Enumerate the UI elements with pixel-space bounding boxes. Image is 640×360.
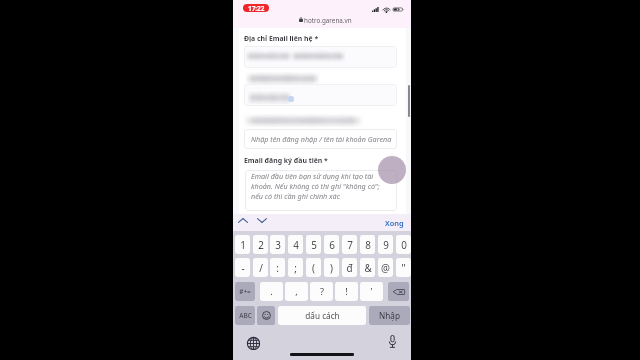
staticText: . <box>270 285 273 298</box>
button[interactable]: Recording 17:22 <box>243 4 269 12</box>
staticText: Email đăng ký đầu tiên * <box>244 156 328 165</box>
staticText: 5 <box>311 238 317 251</box>
button[interactable]: #+= <box>235 282 255 301</box>
staticText: Nhập <box>379 310 400 321</box>
staticText: Địa chỉ Email liên hệ * <box>244 34 319 43</box>
button[interactable]: Nhập tên đăng nhập / tên tài khoản Garen… <box>244 129 397 149</box>
staticText: - <box>241 261 245 274</box>
button[interactable]: Nhập <box>369 306 410 325</box>
staticText: 4 <box>293 238 299 251</box>
button[interactable]: đ <box>342 258 357 277</box>
button[interactable]: 6 <box>324 235 339 254</box>
staticText: ' <box>370 285 373 298</box>
button[interactable]: 5 <box>306 235 321 254</box>
staticText: Nhập tên đăng nhập / tên tài khoản Garen… <box>251 134 392 144</box>
button[interactable]: 1 <box>235 235 250 254</box>
staticText: 6 <box>329 238 335 251</box>
staticText: ABC <box>239 311 252 320</box>
button[interactable]: 4 <box>288 235 303 254</box>
button[interactable]: . <box>260 282 283 301</box>
button[interactable]: ) <box>324 258 339 277</box>
button[interactable]: ! <box>335 282 358 301</box>
staticText: ? <box>320 285 324 298</box>
staticText: 9 <box>383 238 389 251</box>
staticText: 3 <box>275 238 281 251</box>
button[interactable]: & <box>360 258 375 277</box>
button[interactable]: Next field <box>256 217 268 224</box>
staticText: & <box>364 261 372 274</box>
staticText: 17:22 <box>248 4 265 12</box>
button[interactable]: Emoji <box>257 306 275 325</box>
button[interactable]: 8 <box>360 235 375 254</box>
staticText: , <box>295 285 298 298</box>
staticText: đ <box>346 261 353 274</box>
staticText: hotro.garena.vn <box>304 16 352 25</box>
staticText: #+= <box>239 287 251 296</box>
button[interactable]: " <box>396 258 411 277</box>
button[interactable]: Xong <box>382 214 406 231</box>
button[interactable]: 7 <box>342 235 357 254</box>
staticText: ! <box>345 285 348 298</box>
staticText: 1 <box>240 238 246 251</box>
staticText: : <box>276 261 279 274</box>
button[interactable]: Change keyboard <box>246 336 260 350</box>
button[interactable]: ; <box>288 258 303 277</box>
staticText: ) <box>330 261 333 274</box>
button[interactable]: dấu cách <box>278 306 366 325</box>
button[interactable]: @ <box>378 258 393 277</box>
button[interactable]: 3 <box>270 235 285 254</box>
button[interactable]: 9 <box>378 235 393 254</box>
button[interactable]: ( <box>306 258 321 277</box>
staticText: dấu cách <box>305 310 340 321</box>
button[interactable]: Previous field <box>237 217 249 224</box>
button[interactable]: AssistiveTouch <box>378 156 406 184</box>
staticText: Email đầu tiên bạn sử dụng khi tạo tài k… <box>251 171 390 201</box>
staticText: " <box>401 261 406 274</box>
staticText: ; <box>294 261 297 274</box>
button[interactable]: ABC <box>235 306 255 325</box>
button[interactable]: Backspace <box>388 282 409 301</box>
button[interactable]: , <box>285 282 308 301</box>
button[interactable]: 0 <box>396 235 411 254</box>
staticText: @ <box>381 261 390 274</box>
button[interactable]: ? <box>310 282 333 301</box>
staticText: 8 <box>365 238 371 251</box>
button[interactable]: - <box>235 258 250 277</box>
button[interactable]: / <box>253 258 268 277</box>
staticText: 0 <box>401 238 407 251</box>
staticText: Xong <box>385 218 404 228</box>
button[interactable]: Email đầu tiên bạn sử dụng khi tạo tài k… <box>245 170 397 211</box>
staticText: 7 <box>347 238 353 251</box>
staticText: 2 <box>258 238 264 251</box>
button[interactable]: ' <box>360 282 383 301</box>
button[interactable]: : <box>270 258 285 277</box>
staticText: ( <box>312 261 315 274</box>
staticText: / <box>259 261 263 274</box>
button[interactable]: Dictation <box>385 335 399 348</box>
button[interactable]: 2 <box>253 235 268 254</box>
